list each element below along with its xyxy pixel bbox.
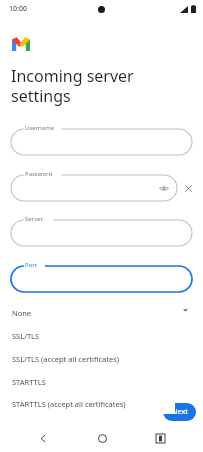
staticText: STARTTLS (accept all certificates) — [12, 399, 126, 409]
button[interactable]: Port — [11, 260, 192, 292]
staticText: Server — [25, 215, 44, 223]
button[interactable]: Clear password — [179, 179, 197, 197]
staticText: Password — [25, 170, 53, 178]
staticText: SSL/TLS — [12, 331, 40, 341]
staticText: Next — [172, 407, 188, 417]
staticText: 10:00 — [9, 4, 27, 14]
button[interactable]: Recent apps — [145, 424, 175, 452]
button[interactable]: Password — [11, 169, 177, 201]
button[interactable]: STARTTLS — [0, 370, 175, 393]
staticText: STARTTLS — [12, 377, 46, 387]
button[interactable]: Back — [28, 424, 58, 452]
button[interactable]: Home — [87, 424, 117, 452]
button[interactable]: SSL/TLS (accept all certificates) — [0, 347, 175, 370]
button[interactable]: Server — [11, 214, 192, 246]
button[interactable]: STARTTLS (accept all certificates) — [0, 393, 175, 414]
button[interactable]: Next — [163, 403, 196, 421]
button[interactable]: None — [0, 301, 175, 324]
button[interactable]: SSL/TLS — [0, 324, 175, 347]
button[interactable]: Username — [11, 123, 192, 155]
staticText: Incoming server settings — [11, 65, 134, 106]
staticText: None — [12, 308, 32, 318]
button[interactable]: Show password — [157, 181, 171, 195]
staticText: Port — [25, 261, 37, 269]
staticText: Username — [25, 124, 55, 132]
button[interactable]: Security type dropdown — [179, 304, 191, 316]
staticText: SSL/TLS (accept all certificates) — [12, 354, 119, 364]
